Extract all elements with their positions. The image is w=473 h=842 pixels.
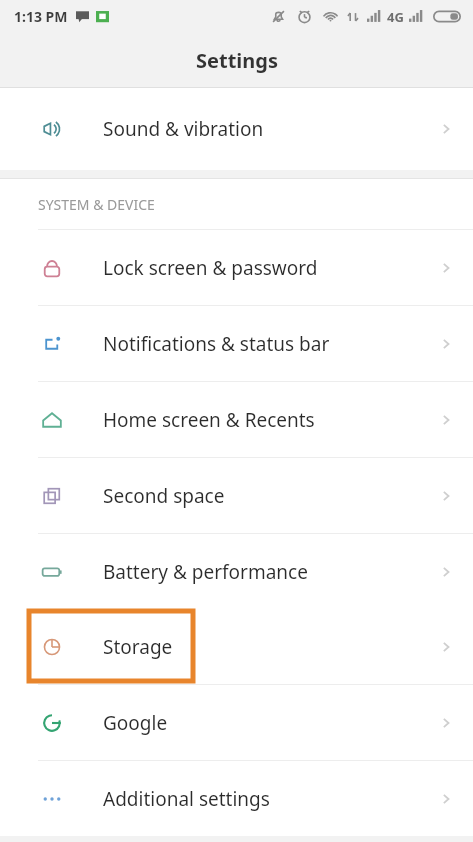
button[interactable]: Notifications & status bar bbox=[0, 306, 473, 381]
staticText: Additional settings bbox=[103, 786, 270, 812]
staticText: Lock screen & password bbox=[103, 255, 318, 281]
staticText: SYSTEM & DEVICE bbox=[38, 195, 155, 214]
staticText: Second space bbox=[103, 483, 225, 509]
staticText: 1:13 PM bbox=[14, 7, 68, 26]
staticText: Sound & vibration bbox=[103, 116, 264, 142]
button[interactable]: Sound & vibration bbox=[0, 88, 473, 170]
staticText: Battery & performance bbox=[103, 559, 308, 585]
button[interactable]: Additional settings bbox=[0, 761, 473, 836]
button[interactable]: Second space bbox=[0, 458, 473, 533]
button[interactable]: Lock screen & password bbox=[0, 230, 473, 305]
staticText: Settings bbox=[196, 47, 278, 74]
staticText: Home screen & Recents bbox=[103, 407, 315, 433]
button[interactable]: Battery & performance bbox=[0, 534, 473, 609]
staticText: 4G bbox=[387, 8, 404, 26]
staticText: Storage bbox=[103, 634, 173, 660]
button[interactable]: Storage bbox=[0, 609, 473, 684]
button[interactable]: Google bbox=[0, 685, 473, 760]
staticText: Google bbox=[103, 710, 168, 736]
button[interactable]: Home screen & Recents bbox=[0, 382, 473, 457]
staticText: Notifications & status bar bbox=[103, 331, 330, 357]
